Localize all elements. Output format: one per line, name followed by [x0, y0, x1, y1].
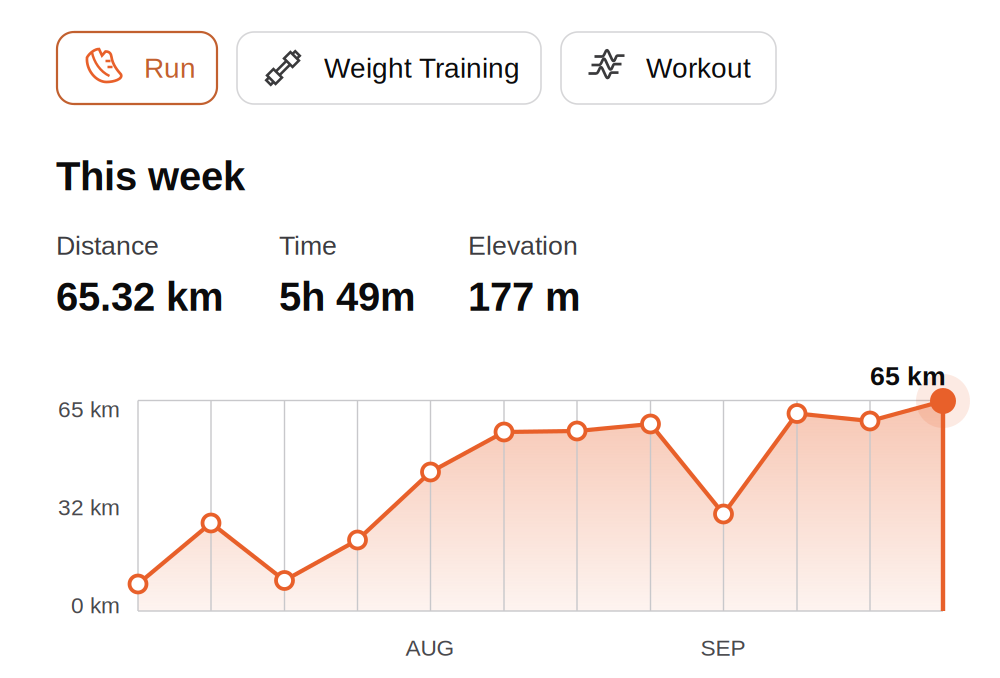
button[interactable]: Weight Training [237, 32, 541, 104]
staticText: 177 m [468, 274, 581, 319]
staticText: Workout [646, 52, 751, 84]
button[interactable]: Run [57, 32, 217, 104]
staticText: Elevation [468, 231, 578, 260]
staticText: 0 km [71, 593, 120, 618]
staticText: Distance [56, 231, 159, 260]
staticText: Run [144, 52, 196, 84]
staticText: 32 km [58, 495, 120, 520]
staticText: SEP [700, 635, 745, 661]
staticText: 65.32 km [56, 274, 224, 319]
staticText: 65 km [58, 397, 120, 422]
staticText: Time [279, 231, 337, 260]
staticText: 65 km [870, 361, 946, 391]
staticText: Weight Training [324, 52, 520, 84]
button[interactable]: Workout [561, 32, 776, 104]
staticText: This week [56, 154, 245, 199]
staticText: 5h 49m [279, 274, 416, 319]
staticText: AUG [405, 635, 454, 661]
